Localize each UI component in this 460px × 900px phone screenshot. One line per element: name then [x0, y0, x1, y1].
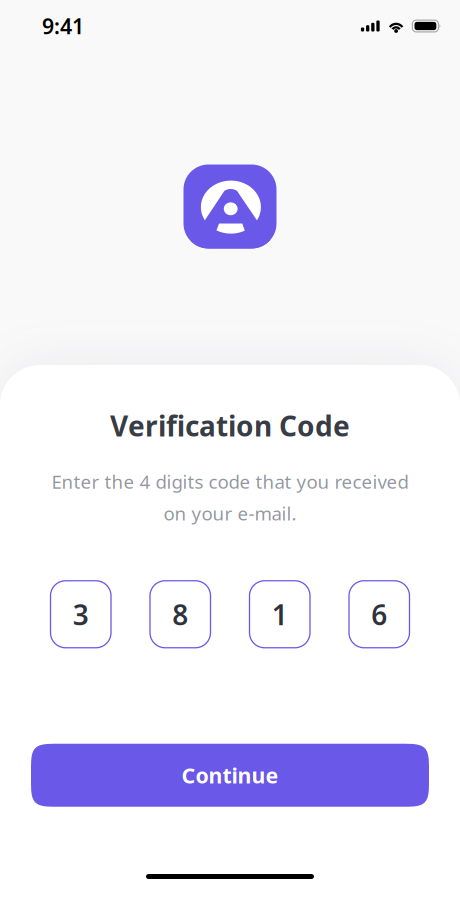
button[interactable]: 3	[50, 581, 111, 648]
staticText: 9:41	[42, 12, 84, 40]
staticText: Continue	[181, 761, 278, 789]
staticText: 3	[73, 596, 89, 633]
staticText: Enter the 4 digits code that you receive…	[51, 469, 408, 494]
button[interactable]: 1	[249, 581, 310, 648]
staticText: 8	[172, 596, 188, 633]
staticText: on your e-mail.	[163, 501, 296, 526]
button[interactable]: 8	[150, 581, 210, 648]
staticText: 6	[371, 596, 387, 633]
button[interactable]: 6	[349, 581, 409, 648]
staticText: 1	[272, 596, 288, 633]
staticText: Verification Code	[110, 407, 350, 444]
button[interactable]: Continue	[31, 744, 429, 807]
